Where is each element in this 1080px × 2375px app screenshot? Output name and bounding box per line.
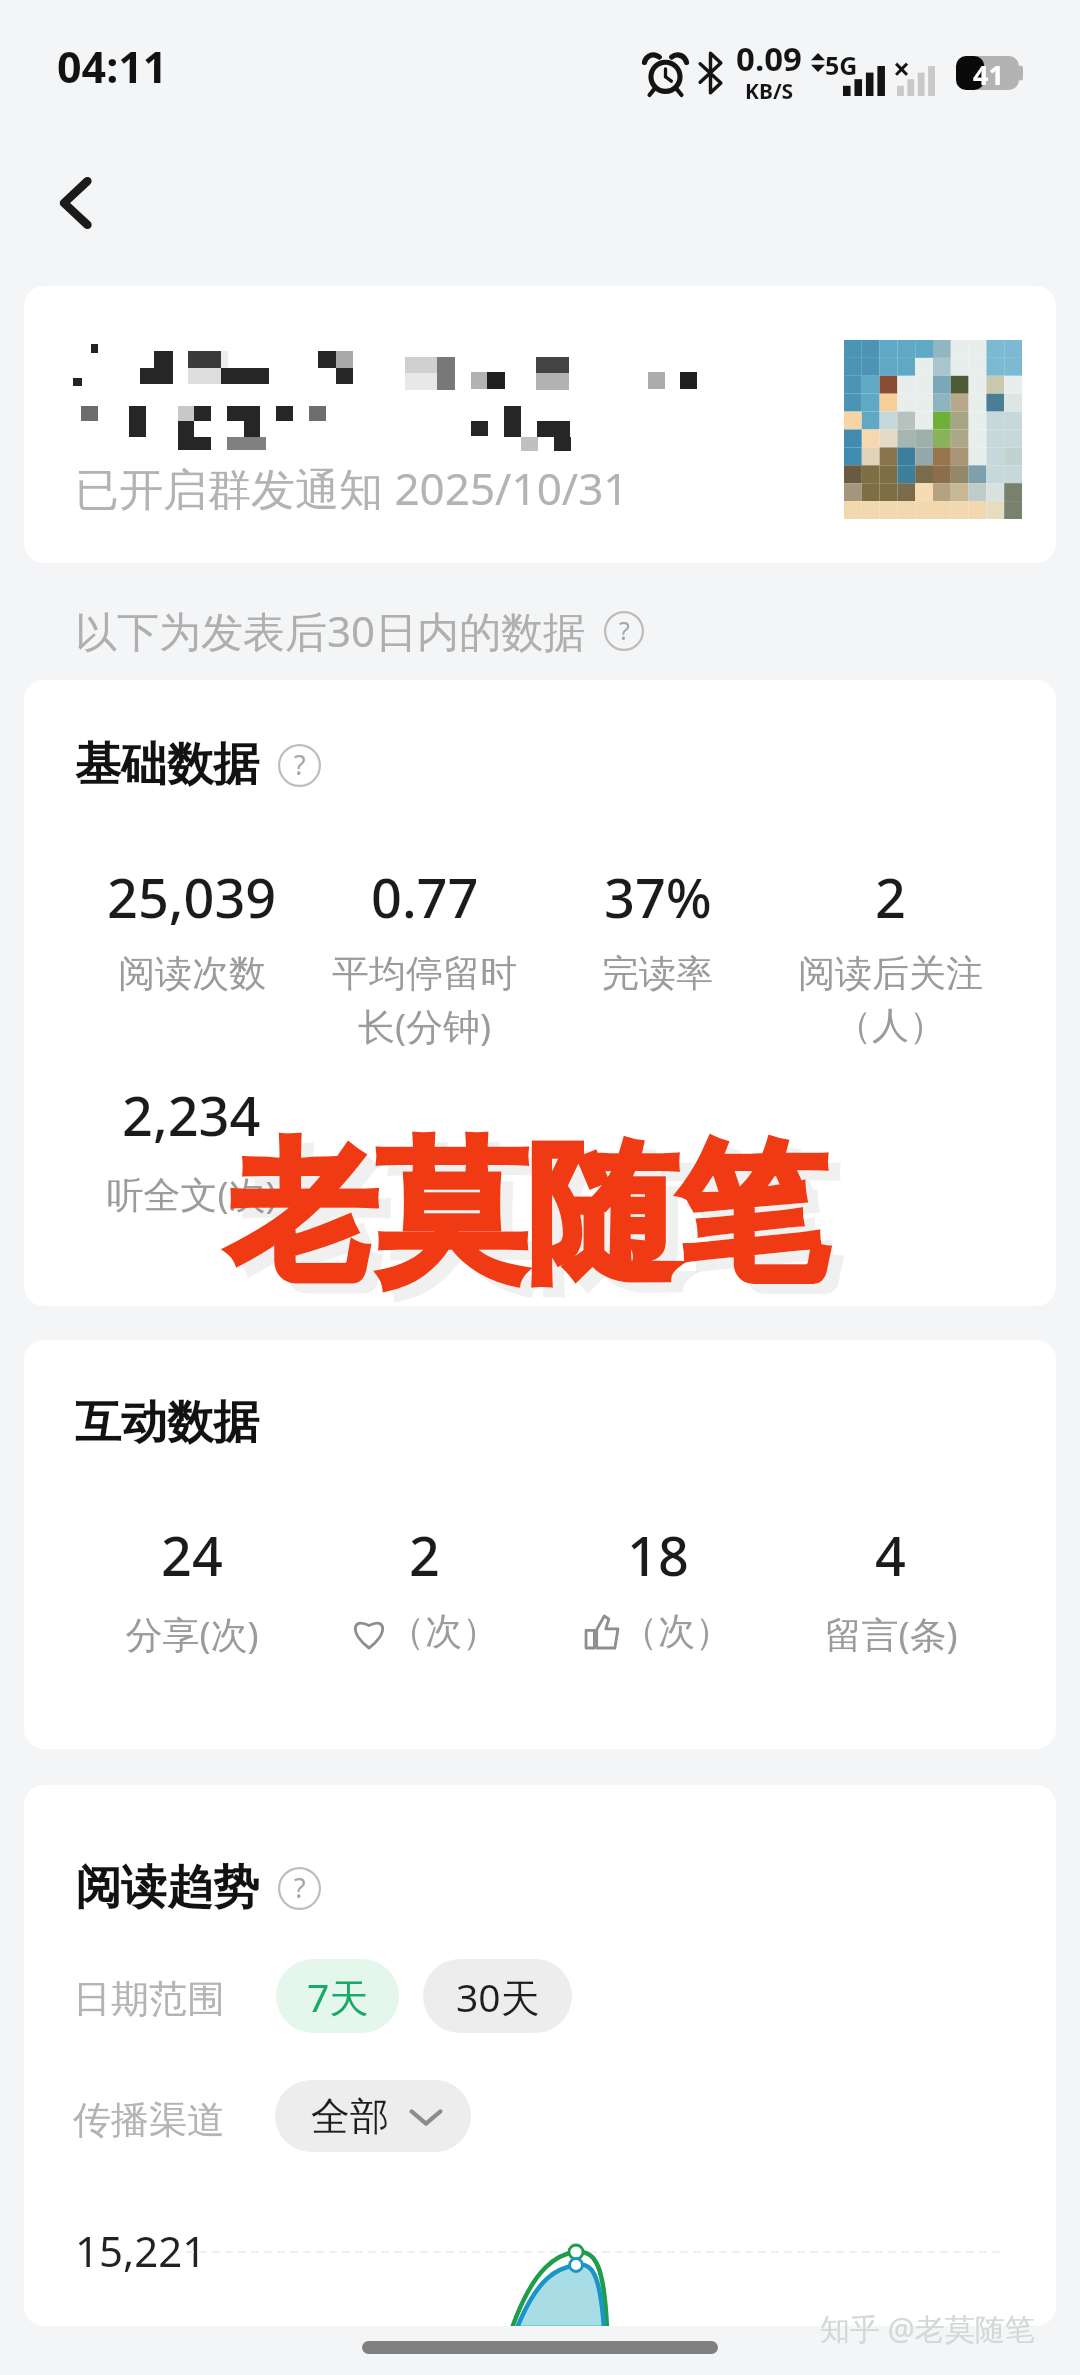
- staticText: 留言(条): [824, 1608, 958, 1659]
- staticText: 15,221: [75, 2222, 207, 2279]
- staticText: 老莫随笔: [226, 1121, 826, 1310]
- staticText: 2: [875, 860, 906, 934]
- staticText: 完读率: [602, 950, 713, 997]
- staticText: 4: [875, 1518, 906, 1592]
- staticText: KB/S: [745, 77, 794, 106]
- staticText: 0.77: [371, 860, 479, 934]
- staticText: ?: [294, 1870, 306, 1906]
- staticText: 以下为发表后30日内的数据: [75, 602, 586, 659]
- button[interactable]: Back: [36, 162, 118, 244]
- staticText: 互动数据: [75, 1394, 259, 1452]
- staticText: 全部: [311, 2092, 389, 2141]
- staticText: 25,039: [107, 860, 277, 934]
- staticText: 5G: [825, 48, 858, 82]
- staticText: ×: [893, 48, 911, 89]
- staticText: 知乎 @老莫随笔: [820, 2308, 1035, 2349]
- staticText: 日期范围: [73, 1975, 225, 2023]
- button[interactable]: 7天: [276, 1959, 399, 2033]
- staticText: 老莫随笔: [238, 1131, 838, 1320]
- staticText: （次）: [388, 1608, 499, 1655]
- staticText: 30天: [456, 1970, 540, 2023]
- staticText: 2: [409, 1518, 440, 1592]
- button[interactable]: 全部: [275, 2080, 471, 2152]
- staticText: 平均停留时 长(分钟): [332, 950, 517, 1051]
- staticText: 0.09: [736, 36, 802, 81]
- staticText: 阅读后关注 （人）: [798, 950, 983, 1049]
- staticText: 传播渠道: [73, 2096, 225, 2144]
- staticText: 7天: [307, 1970, 369, 2023]
- staticText: 阅读趋势: [75, 1859, 259, 1917]
- staticText: （次）: [621, 1608, 732, 1655]
- button[interactable]: 30天: [423, 1959, 572, 2033]
- staticText: 已开启群发通知 2025/10/31: [75, 458, 629, 518]
- staticText: 基础数据: [75, 736, 259, 794]
- staticText: 18: [627, 1518, 689, 1592]
- staticText: 2,234: [122, 1078, 261, 1152]
- staticText: ?: [619, 613, 630, 647]
- staticText: 听全文(次): [106, 1168, 277, 1219]
- staticText: ?: [294, 747, 306, 783]
- staticText: 阅读次数: [118, 950, 266, 997]
- staticText: 41: [973, 56, 1004, 90]
- staticText: 37%: [604, 860, 712, 934]
- staticText: 04:11: [57, 37, 168, 96]
- staticText: 分享(次): [125, 1608, 259, 1659]
- staticText: 24: [161, 1518, 223, 1592]
